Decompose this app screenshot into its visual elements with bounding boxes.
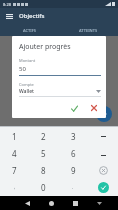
button[interactable]: 1 (0, 127, 29, 145)
button[interactable]: 5 (29, 145, 58, 162)
staticText: 8 (41, 165, 46, 176)
staticText: . (72, 184, 74, 191)
button[interactable]: Entrée (88, 179, 118, 196)
staticText: 4 (12, 148, 17, 159)
button[interactable]: 0 (29, 179, 58, 196)
staticText: , (14, 184, 16, 191)
button[interactable]: 4 (0, 145, 29, 162)
button[interactable]: 2 (29, 127, 58, 145)
button[interactable]: Masquer le clavier (87, 196, 111, 210)
button[interactable]: Effacer (88, 162, 118, 179)
button[interactable]: 3 (58, 127, 88, 145)
staticText: 0 (41, 182, 46, 193)
staticText: 3 (71, 131, 76, 142)
staticText: ATTEINTS (79, 28, 98, 33)
staticText: 9 (71, 165, 76, 176)
button[interactable]: 6 (58, 145, 88, 162)
button[interactable]: Annuler (87, 101, 101, 115)
button[interactable]: Retour (15, 196, 39, 210)
staticText: 7 (12, 165, 17, 176)
button[interactable]: Moins (88, 127, 118, 145)
button[interactable]: Accueil (39, 196, 63, 210)
staticText: 2 (41, 131, 46, 142)
staticText: 6 (71, 148, 76, 159)
staticText: 1 (12, 131, 17, 142)
staticText: 5 (41, 148, 46, 159)
staticText: Compte (19, 82, 34, 87)
staticText: 8:28 (3, 2, 11, 7)
button[interactable]: Tiret bas (88, 145, 118, 162)
button[interactable]: Ajouter (96, 106, 112, 122)
button[interactable]: ATTEINTS (59, 24, 118, 36)
staticText: 50 (19, 65, 26, 73)
staticText: Wallet (19, 88, 34, 95)
staticText: Montant (19, 58, 36, 63)
button[interactable]: 9 (58, 162, 88, 179)
staticText: ACTIFS (23, 28, 37, 33)
button[interactable]: Valider (67, 101, 81, 115)
button[interactable]: ACTIFS (0, 24, 59, 36)
button[interactable]: 8 (29, 162, 58, 179)
button[interactable]: Récents (63, 196, 87, 210)
staticText: Ajouter progrès (19, 42, 71, 52)
button[interactable]: Menu (5, 12, 14, 21)
button[interactable]: 7 (0, 162, 29, 179)
staticText: Objectifs (19, 12, 45, 20)
